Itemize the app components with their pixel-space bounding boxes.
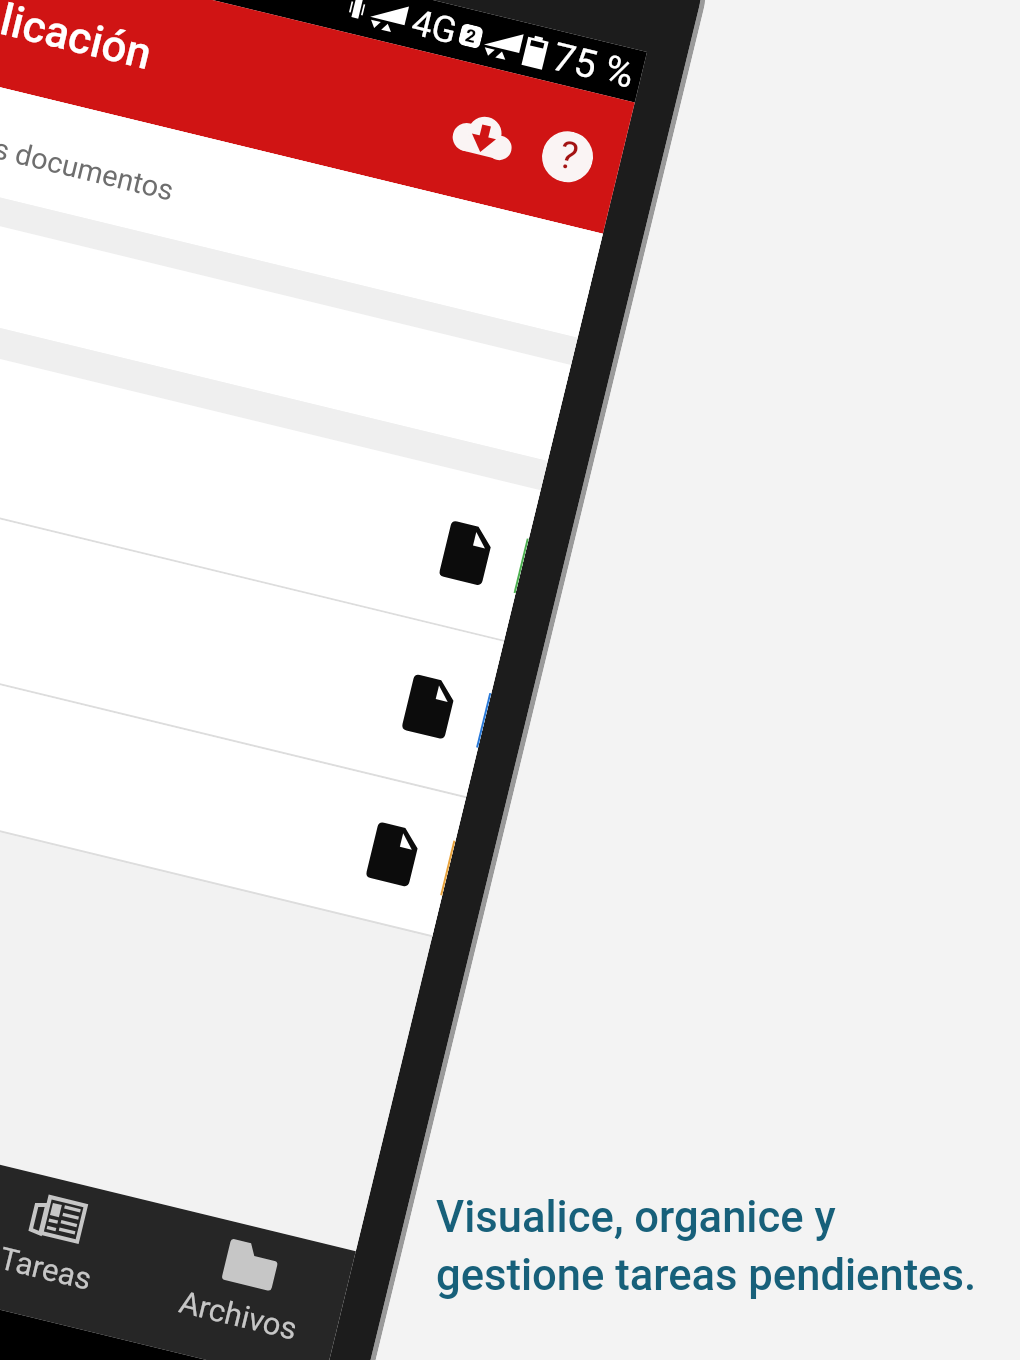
- button[interactable]: Ayuda: [524, 113, 611, 200]
- button[interactable]: Archivos: [130, 1204, 356, 1360]
- button[interactable]: Tareas: [0, 1158, 163, 1341]
- staticText: Mis documentos: [0, 123, 178, 208]
- staticText: 4G: [407, 1, 461, 53]
- button[interactable]: [0, 178, 571, 461]
- button[interactable]: Descargar: [430, 83, 537, 189]
- button[interactable]: [0, 304, 541, 642]
- staticText: Tareas: [0, 1240, 96, 1297]
- staticText: 2: [464, 25, 478, 47]
- staticText: Archivos: [176, 1284, 301, 1347]
- button[interactable]: Mis documentos: [0, 47, 603, 338]
- button[interactable]: [0, 455, 504, 798]
- staticText: Aplicación: [0, 0, 157, 80]
- staticText: Visualice, organice y gestione tareas pe…: [436, 1192, 977, 1301]
- staticText: 75 %: [548, 34, 639, 98]
- button[interactable]: [0, 612, 466, 937]
- staticText: ?: [554, 132, 582, 180]
